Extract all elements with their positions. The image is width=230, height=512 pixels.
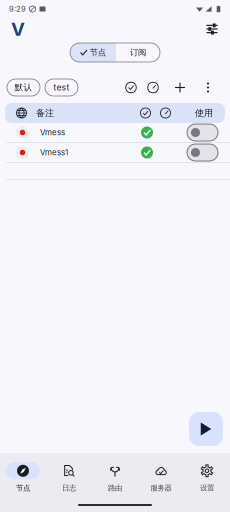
button[interactable]: 路由 [92,461,138,494]
button[interactable]: 节点 [70,43,116,62]
button[interactable]: test [45,79,78,96]
button[interactable]: Vmess1 [0,143,230,163]
staticText: 服务器 [150,483,171,493]
button[interactable]: App logo [7,20,29,38]
button[interactable]: More options [198,79,218,96]
button[interactable]: Test latency [142,79,164,96]
button[interactable]: Select all [120,79,142,96]
button[interactable]: Vmess [0,123,230,143]
staticText: Vmess [40,128,65,137]
staticText: 9:29 [9,4,26,13]
button[interactable]: 默认 [7,79,40,96]
staticText: Vmess1 [40,148,68,157]
staticText: 设置 [200,483,214,493]
button[interactable]: Start connection [189,412,223,446]
button[interactable]: 节点 [0,461,46,494]
button[interactable]: Filter [201,20,223,38]
staticText: 日志 [62,483,76,493]
button[interactable]: 日志 [46,461,92,494]
staticText: test [53,82,69,93]
staticText: 默认 [14,82,32,93]
staticText: V [11,18,25,40]
staticText: 路由 [108,483,122,493]
staticText: 备注 [36,107,54,119]
staticText: 节点 [90,47,106,58]
button[interactable]: Add [169,79,191,96]
button[interactable]: 订阅 [116,43,160,62]
button[interactable]: 服务器 [138,461,184,494]
staticText: 节点 [16,483,30,493]
staticText: 订阅 [130,47,146,58]
staticText: 使用 [195,107,213,119]
button[interactable]: 设置 [184,461,230,494]
